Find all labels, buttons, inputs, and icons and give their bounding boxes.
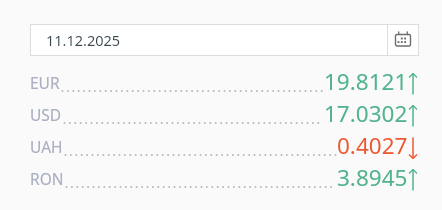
staticText: RON [30, 168, 64, 189]
staticText: USD [30, 104, 62, 125]
button[interactable]: Open calendar [388, 24, 419, 56]
button[interactable]: UAH [30, 128, 418, 160]
staticText: 11.12.2025 [46, 30, 121, 50]
button[interactable]: RON [30, 160, 418, 192]
staticText: UAH [30, 136, 63, 157]
staticText: 0.4027 [337, 130, 408, 161]
button[interactable]: 11.12.2025 [30, 24, 387, 56]
staticText: EUR [30, 72, 60, 93]
staticText: 3.8945 [337, 162, 408, 193]
staticText: 17.0302 [324, 98, 408, 129]
button[interactable]: USD [30, 96, 418, 128]
staticText: 19.8121 [324, 66, 408, 97]
button[interactable]: EUR [30, 64, 418, 96]
